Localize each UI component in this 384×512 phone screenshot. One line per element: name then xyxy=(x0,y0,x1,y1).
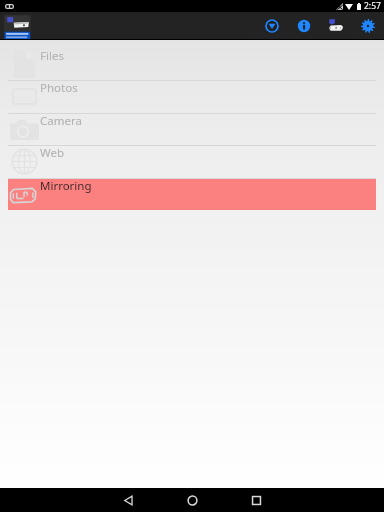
staticText: Files xyxy=(40,48,64,64)
button[interactable]: Files xyxy=(8,48,376,80)
button[interactable]: Web xyxy=(8,145,376,178)
staticText: Mirroring xyxy=(40,178,92,194)
staticText: Photos xyxy=(40,80,78,96)
button[interactable]: Wireless Imageability xyxy=(4,14,31,40)
button[interactable]: Mirroring xyxy=(8,178,376,210)
button[interactable]: Camera xyxy=(8,113,376,145)
staticText: Camera xyxy=(40,113,82,129)
button[interactable]: Download xyxy=(256,12,288,39)
button[interactable]: Recent apps xyxy=(244,488,268,512)
button[interactable]: Back xyxy=(116,488,140,512)
button[interactable]: Home xyxy=(180,488,204,512)
button[interactable]: Photos xyxy=(8,80,376,113)
button[interactable]: Settings xyxy=(352,12,384,39)
staticText: 2:57 xyxy=(364,0,381,12)
staticText: Web xyxy=(40,145,65,161)
button[interactable]: Cast device xyxy=(320,12,352,39)
button[interactable]: Info xyxy=(288,12,320,39)
